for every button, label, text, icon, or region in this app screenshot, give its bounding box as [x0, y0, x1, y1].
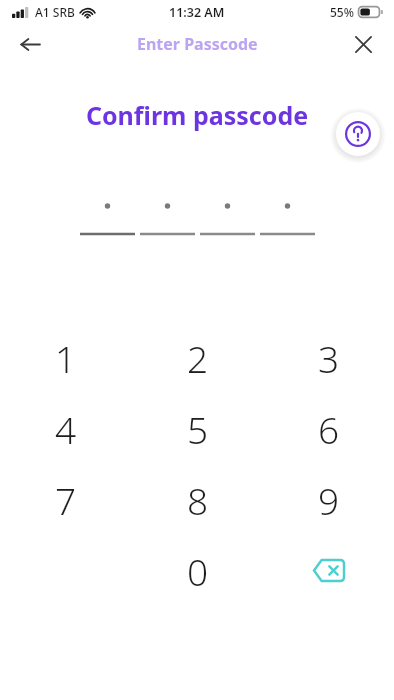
- staticText: A1 SRB: [35, 4, 75, 20]
- staticText: 1: [55, 333, 77, 383]
- button[interactable]: 8: [132, 464, 263, 535]
- staticText: 3: [318, 333, 340, 383]
- button[interactable]: 5: [132, 393, 263, 464]
- staticText: 6: [318, 404, 340, 454]
- button[interactable]: 2: [132, 322, 263, 393]
- button[interactable]: Backspace: [263, 535, 394, 606]
- button[interactable]: 0: [132, 535, 263, 606]
- button[interactable]: Help: [336, 112, 380, 156]
- button[interactable]: 6: [263, 393, 394, 464]
- staticText: Enter Passcode: [137, 33, 258, 55]
- staticText: 5: [187, 404, 209, 454]
- staticText: 55%: [330, 4, 354, 20]
- button[interactable]: 3: [263, 322, 394, 393]
- staticText: 9: [318, 475, 340, 525]
- button[interactable]: Back: [9, 24, 51, 64]
- staticText: Confirm passcode: [0, 98, 394, 132]
- button[interactable]: 9: [263, 464, 394, 535]
- staticText: 11:32 AM: [169, 4, 225, 21]
- staticText: 7: [55, 475, 77, 525]
- staticText: 0: [187, 546, 209, 596]
- button[interactable]: 1: [0, 322, 132, 393]
- button[interactable]: Close: [342, 24, 384, 64]
- staticText: 4: [55, 404, 77, 454]
- button[interactable]: 4: [0, 393, 132, 464]
- staticText: 2: [187, 333, 209, 383]
- staticText: 8: [187, 475, 209, 525]
- button[interactable]: 7: [0, 464, 132, 535]
